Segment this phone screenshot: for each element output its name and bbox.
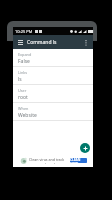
button[interactable]: Clean virus and track [13, 153, 93, 167]
button[interactable]: Navigation menu [16, 38, 24, 46]
staticText: on your phone! [29, 162, 55, 164]
staticText: When [18, 106, 29, 111]
staticText: 10:25 PM [15, 29, 33, 34]
staticText: User [18, 88, 27, 93]
staticText: Command ls [27, 39, 57, 46]
staticText: False [18, 58, 30, 65]
staticText: Expand [18, 52, 32, 57]
staticText: ls [18, 76, 22, 83]
button[interactable]: Expand [13, 49, 93, 67]
button[interactable]: More options [82, 38, 90, 46]
button[interactable]: Run command [80, 143, 90, 153]
button[interactable]: When [13, 103, 93, 121]
button[interactable]: User [13, 85, 93, 103]
button[interactable]: Links [13, 67, 93, 85]
staticText: Links [18, 70, 28, 75]
staticText: CLEAN NOW [70, 158, 87, 163]
staticText: Clean virus and track [29, 157, 65, 162]
staticText: Website [18, 112, 37, 119]
button[interactable]: CLEAN NOW [70, 158, 87, 163]
staticText: root [18, 94, 28, 101]
